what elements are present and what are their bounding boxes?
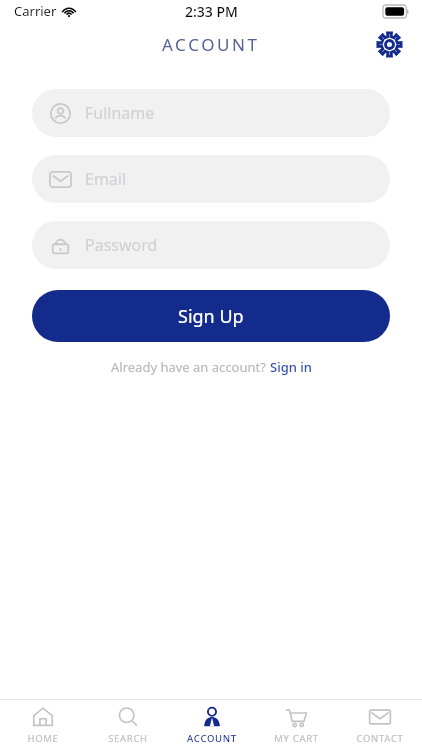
staticText: Sign Up: [178, 304, 244, 329]
staticText: Sign in: [270, 358, 312, 376]
staticText: Email: [85, 168, 127, 190]
staticText: MY CART: [274, 732, 319, 745]
button[interactable]: Email: [32, 155, 390, 203]
button[interactable]: Fullname: [32, 89, 390, 137]
button[interactable]: CONTACT: [338, 700, 422, 750]
button[interactable]: HOME: [0, 700, 85, 750]
button[interactable]: Password: [32, 221, 390, 269]
button[interactable]: SEARCH: [85, 700, 170, 750]
button[interactable]: ACCOUNT: [170, 700, 254, 750]
staticText: Password: [85, 234, 158, 256]
staticText: SEARCH: [108, 732, 148, 745]
staticText: 2:33 PM: [185, 2, 238, 21]
button[interactable]: MY CART: [254, 700, 338, 750]
button[interactable]: Sign in: [270, 358, 312, 376]
button[interactable]: Sign Up: [32, 290, 390, 342]
staticText: Carrier: [14, 2, 57, 20]
staticText: Already have an account?: [111, 358, 270, 376]
staticText: CONTACT: [356, 732, 404, 745]
staticText: ACCOUNT: [187, 732, 237, 745]
staticText: ACCOUNT: [162, 33, 260, 56]
staticText: HOME: [27, 732, 59, 745]
staticText: Fullname: [85, 102, 155, 124]
button[interactable]: Settings: [370, 25, 408, 63]
